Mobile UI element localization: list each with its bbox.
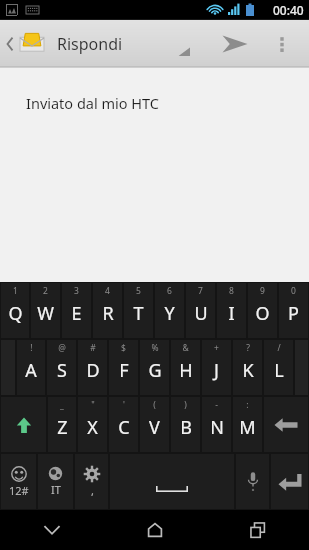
button[interactable]: %	[140, 340, 169, 395]
button[interactable]: !	[17, 340, 45, 395]
staticText: 6	[167, 285, 172, 297]
button[interactable]: Lingua	[38, 454, 73, 509]
staticText: !	[30, 342, 33, 354]
button[interactable]: Voce	[236, 454, 269, 509]
button[interactable]: 5	[124, 283, 153, 338]
staticText: B	[180, 415, 192, 440]
staticText: 5	[136, 285, 141, 297]
staticText: IT	[51, 482, 61, 497]
staticText: _	[60, 399, 64, 411]
button[interactable]: +	[202, 340, 231, 395]
staticText: G	[148, 358, 162, 383]
staticText: I	[228, 301, 235, 326]
staticText: $	[121, 342, 126, 354]
staticText: '	[123, 399, 125, 411]
staticText: X	[87, 415, 98, 440]
staticText: 4	[105, 285, 110, 297]
staticText: 1	[13, 285, 18, 297]
staticText: ,	[91, 483, 94, 498]
staticText: Rispondi	[57, 33, 123, 55]
staticText: M	[239, 415, 256, 440]
staticText: L	[274, 358, 284, 383]
staticText: :	[246, 399, 249, 411]
staticText: /	[277, 342, 281, 354]
button[interactable]: 0	[279, 283, 308, 338]
button[interactable]: $	[109, 340, 138, 395]
button[interactable]: 4	[93, 283, 122, 338]
button[interactable]: 1	[1, 283, 29, 338]
button[interactable]: 7	[186, 283, 215, 338]
button[interactable]: 2	[31, 283, 60, 338]
staticText: 3	[74, 285, 79, 297]
staticText: 12#	[9, 483, 29, 498]
staticText: J	[214, 358, 219, 383]
staticText: )	[184, 399, 187, 411]
button[interactable]: #	[78, 340, 107, 395]
staticText: S	[57, 358, 67, 383]
button[interactable]: Invio	[271, 454, 308, 509]
staticText: U	[194, 301, 208, 326]
button[interactable]: &	[171, 340, 200, 395]
staticText: O	[255, 301, 270, 326]
staticText: N	[210, 415, 224, 440]
staticText: %	[151, 342, 159, 354]
staticText: (	[153, 399, 156, 411]
button[interactable]: 8	[217, 283, 246, 338]
staticText: C	[118, 415, 130, 440]
staticText: F	[119, 358, 129, 383]
staticText: T	[133, 301, 144, 326]
button[interactable]: /	[264, 340, 293, 395]
staticText: E	[71, 301, 82, 326]
staticText: A	[25, 358, 37, 383]
staticText: &	[182, 342, 189, 354]
button[interactable]: Invia	[213, 20, 257, 68]
button[interactable]: Spazio	[110, 454, 234, 509]
staticText: ?	[246, 342, 250, 354]
button[interactable]: ?	[233, 340, 262, 395]
button[interactable]: :	[233, 397, 262, 452]
button[interactable]: Home	[103, 510, 206, 550]
button[interactable]: Backspace	[264, 397, 308, 452]
staticText: D	[86, 358, 100, 383]
button[interactable]: Impostazioni	[75, 454, 108, 509]
staticText: 9	[260, 285, 265, 297]
staticText: -	[215, 399, 218, 411]
button[interactable]: 9	[248, 283, 277, 338]
button[interactable]: )	[171, 397, 200, 452]
button[interactable]: "	[78, 397, 107, 452]
button[interactable]: -	[202, 397, 231, 452]
button[interactable]: 3	[62, 283, 91, 338]
staticText: Inviato dal mio HTC	[26, 93, 159, 113]
staticText: 2	[43, 285, 48, 297]
staticText: 8	[229, 285, 234, 297]
staticText: P	[288, 301, 299, 326]
button[interactable]: Maiuscole	[1, 397, 46, 452]
staticText: @	[58, 342, 66, 354]
staticText: +	[214, 342, 219, 354]
staticText: K	[242, 358, 254, 383]
button[interactable]: _	[48, 397, 76, 452]
staticText: 00:40	[273, 2, 304, 18]
staticText: 0	[291, 285, 296, 297]
staticText: 7	[198, 285, 203, 297]
button[interactable]: @	[47, 340, 76, 395]
staticText: Z	[57, 415, 68, 440]
button[interactable]: Recenti	[206, 510, 309, 550]
button[interactable]: (	[140, 397, 169, 452]
button[interactable]: Altre opzioni	[263, 20, 301, 68]
staticText: #	[90, 342, 96, 354]
button[interactable]: 6	[155, 283, 184, 338]
button[interactable]: Nascondi tastiera	[0, 510, 103, 550]
staticText: Q	[8, 301, 23, 326]
button[interactable]: Indietro	[0, 20, 133, 68]
staticText: "	[91, 399, 95, 411]
button[interactable]: Simboli	[1, 454, 36, 509]
staticText: Y	[164, 301, 175, 326]
staticText: R	[102, 301, 114, 326]
staticText: H	[179, 358, 193, 383]
button[interactable]: '	[109, 397, 138, 452]
staticText: V	[149, 415, 160, 440]
other: Indietro	[5, 34, 15, 54]
